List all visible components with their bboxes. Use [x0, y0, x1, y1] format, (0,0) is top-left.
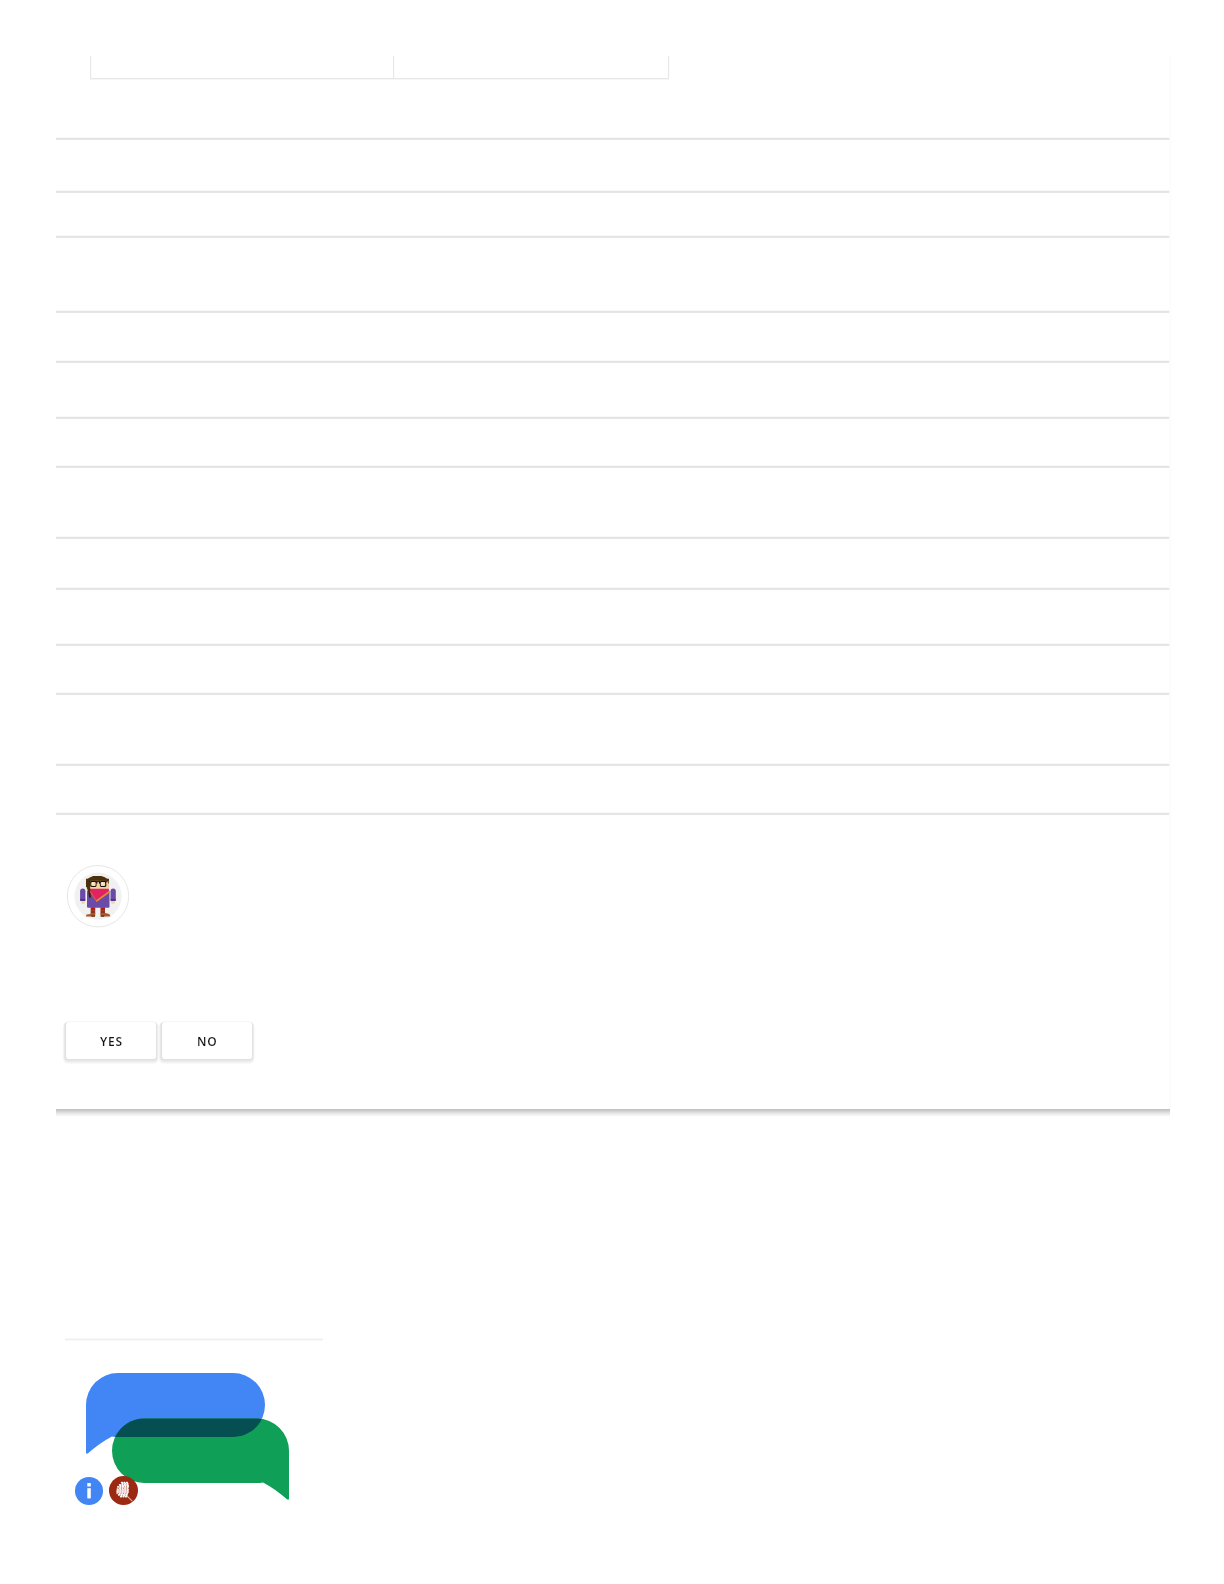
button[interactable]: Profile avatar	[67, 865, 129, 927]
staticText: NO	[197, 1033, 218, 1049]
button[interactable]: NO	[162, 1022, 252, 1059]
staticText: YES	[100, 1033, 123, 1049]
button[interactable]: Pinecone badge	[109, 1476, 138, 1505]
button[interactable]: Info	[75, 1477, 103, 1505]
button[interactable]: YES	[66, 1022, 156, 1059]
